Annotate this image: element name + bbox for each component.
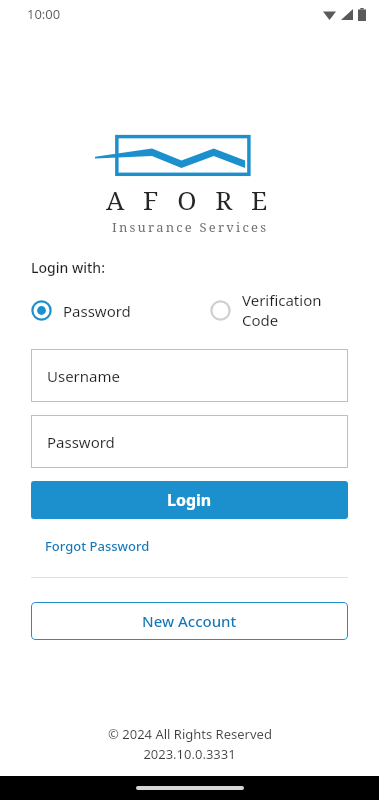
staticText: Login with: bbox=[31, 258, 105, 277]
button[interactable]: Forgot Password bbox=[45, 537, 150, 555]
staticText: 2023.10.0.3331 bbox=[143, 745, 236, 763]
staticText: Login bbox=[167, 489, 212, 511]
other: AFORE Insurance Services logo bbox=[95, 132, 285, 178]
staticText: Password bbox=[47, 432, 115, 452]
staticText: 10:00 bbox=[27, 5, 61, 23]
staticText: Password bbox=[63, 301, 131, 321]
button[interactable]: Password bbox=[31, 296, 210, 325]
button[interactable]: Username bbox=[31, 349, 348, 402]
staticText: Verification Code bbox=[242, 290, 348, 330]
staticText: Username bbox=[47, 366, 120, 386]
button[interactable]: Password bbox=[31, 415, 348, 468]
button[interactable]: Verification Code bbox=[210, 286, 348, 334]
staticText: Forgot Password bbox=[45, 537, 150, 555]
staticText: © 2024 All Rights Reserved bbox=[108, 725, 272, 743]
staticText: A F O R E bbox=[106, 182, 274, 217]
staticText: New Account bbox=[142, 611, 237, 631]
staticText: Insurance Services bbox=[112, 218, 269, 232]
button[interactable]: New Account bbox=[31, 602, 348, 640]
button[interactable]: Login bbox=[31, 481, 348, 519]
